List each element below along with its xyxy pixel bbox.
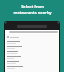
button[interactable] (5, 55, 59, 60)
button[interactable]: Search restaurants (9, 31, 58, 33)
button[interactable] (5, 40, 59, 45)
button[interactable] (5, 60, 59, 65)
staticText: restaurants nearby (13, 10, 52, 15)
button[interactable] (5, 50, 59, 55)
staticText: Select from (21, 4, 44, 9)
button[interactable] (5, 45, 59, 50)
button[interactable] (5, 65, 59, 70)
